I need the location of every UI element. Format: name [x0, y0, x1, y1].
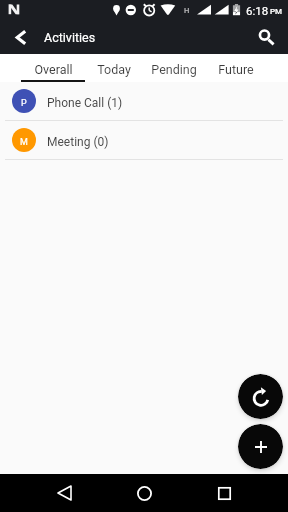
- staticText: Meeting (0): [47, 135, 109, 149]
- button[interactable]: Back: [0, 20, 40, 54]
- staticText: PM: [270, 7, 283, 16]
- button[interactable]: P: [0, 82, 288, 121]
- button[interactable]: Overall: [21, 54, 85, 82]
- button[interactable]: Refresh: [238, 374, 283, 419]
- staticText: 6:18: [246, 4, 269, 17]
- staticText: M: [20, 137, 28, 148]
- staticText: Pending: [151, 62, 197, 77]
- button[interactable]: Back: [45, 474, 83, 512]
- staticText: H: [184, 6, 190, 15]
- staticText: Phone Call (1): [47, 96, 123, 110]
- staticText: P: [21, 98, 27, 109]
- staticText: Future: [218, 62, 254, 77]
- button[interactable]: Add: [238, 424, 283, 469]
- button[interactable]: Pending: [142, 54, 206, 82]
- staticText: Overall: [34, 62, 73, 77]
- button[interactable]: Search: [248, 20, 288, 54]
- button[interactable]: M: [0, 121, 288, 160]
- button[interactable]: Today: [85, 54, 142, 82]
- button[interactable]: Home: [125, 474, 163, 512]
- button[interactable]: Future: [206, 54, 265, 82]
- button[interactable]: Recents: [205, 474, 243, 512]
- staticText: Activities: [44, 30, 96, 45]
- staticText: Today: [97, 62, 131, 77]
